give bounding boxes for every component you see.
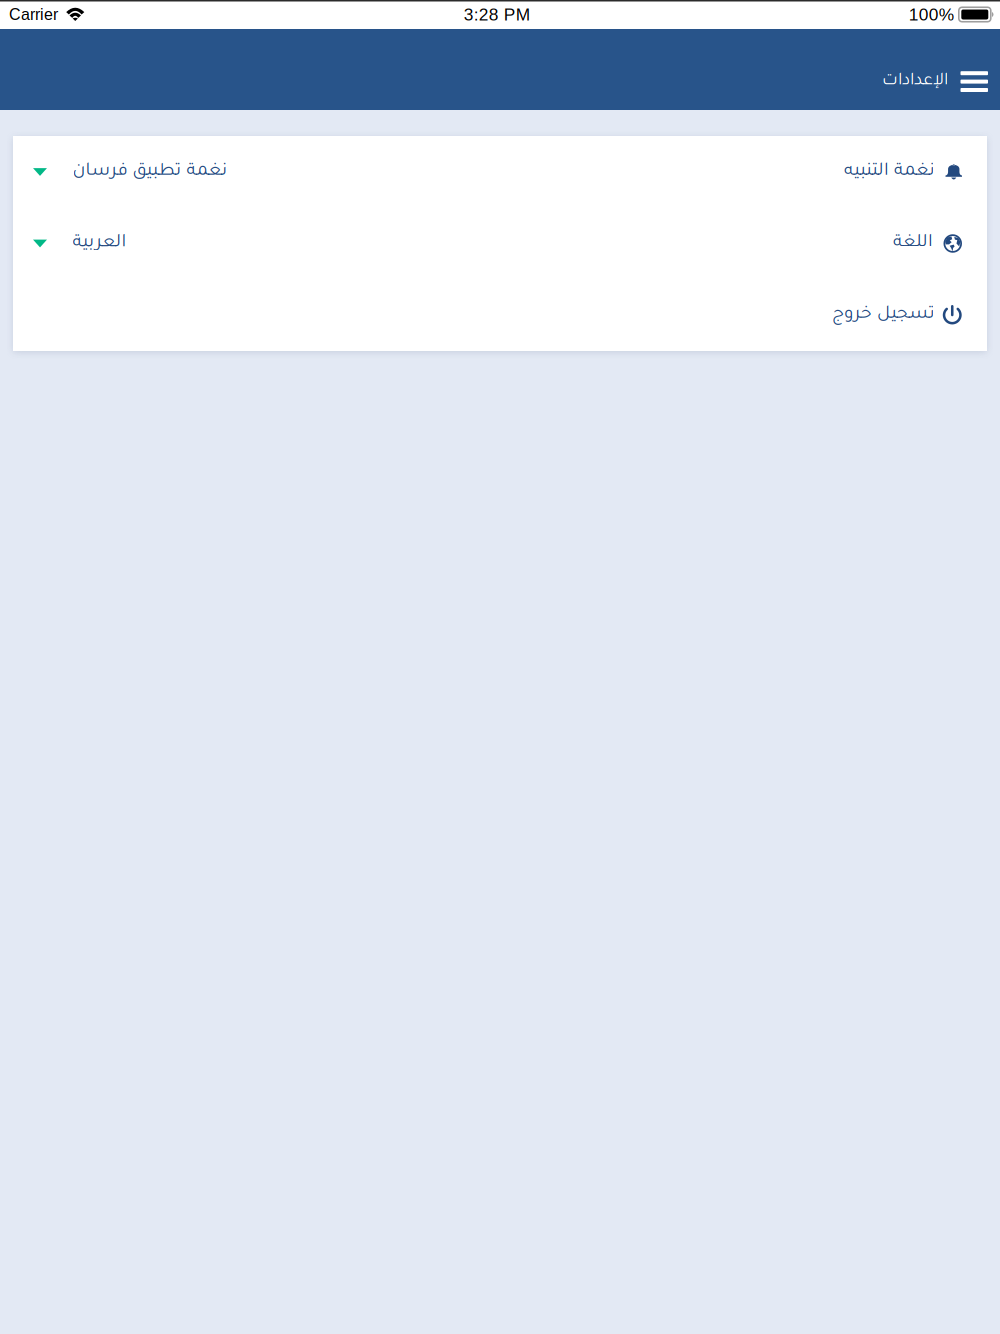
staticText: Carrier	[9, 6, 58, 23]
staticText: الإعدادات	[881, 72, 947, 91]
button[interactable]: العربية	[33, 226, 126, 261]
staticText: 100%	[909, 5, 954, 24]
staticText: نغمة تطبيق فرسان	[72, 162, 227, 182]
button[interactable]: نغمة تطبيق فرسان	[33, 154, 227, 190]
staticText: تسجيل خروج	[831, 305, 934, 325]
button[interactable]: نغمة تطبيق فرسان	[13, 136, 987, 208]
staticText: اللغة	[892, 234, 932, 253]
staticText: 3:28 PM	[464, 5, 530, 24]
staticText: العربية	[72, 234, 126, 253]
staticText: نغمة التنبيه	[843, 162, 934, 182]
button[interactable]: تسجيل خروج	[13, 279, 987, 351]
button[interactable]: العربية	[13, 208, 987, 279]
button[interactable]: Settings menu	[875, 62, 994, 101]
